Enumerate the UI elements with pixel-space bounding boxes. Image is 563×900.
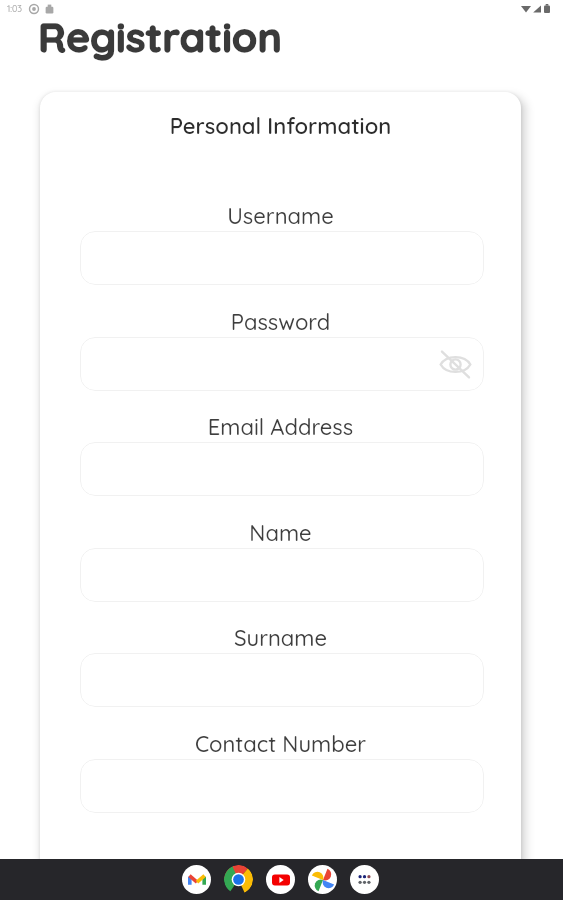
button[interactable]: Photos <box>308 865 337 894</box>
button[interactable]: Gmail <box>182 865 211 894</box>
staticText: Password <box>40 308 521 336</box>
staticText: Name <box>40 519 521 547</box>
button[interactable]: YouTube <box>266 865 295 894</box>
staticText: Username <box>40 202 521 230</box>
button[interactable]: Toggle password visibility <box>436 345 474 383</box>
staticText: Personal Information <box>40 112 521 140</box>
staticText: Surname <box>40 624 521 652</box>
button[interactable]: All apps <box>350 865 379 894</box>
staticText: Contact Number <box>40 730 521 758</box>
button[interactable]: Toggle password visibility <box>80 337 484 391</box>
staticText: Email Address <box>40 413 521 441</box>
staticText: Registration <box>38 11 282 62</box>
staticText: 1:03 <box>7 3 23 14</box>
button[interactable]: Chrome <box>224 865 253 894</box>
